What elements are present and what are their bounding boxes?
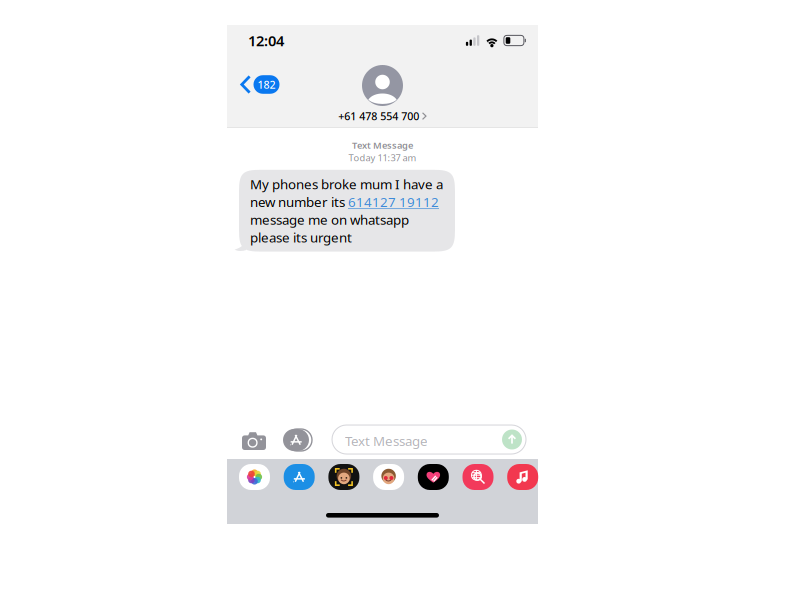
staticText: 614127 19112 — [348, 193, 439, 211]
staticText: message me on whatsapp — [250, 211, 409, 228]
staticText: +61 478 554 700 — [338, 109, 419, 123]
staticText: 182 — [257, 77, 275, 92]
staticText: new number its — [250, 193, 348, 211]
button[interactable]: App Store — [283, 429, 312, 451]
button[interactable]: Take photo — [242, 431, 266, 450]
button[interactable]: Photos — [239, 464, 270, 490]
button[interactable]: App Store — [284, 464, 315, 490]
button[interactable]: Images — [462, 464, 493, 490]
button[interactable]: Back to conversation list — [240, 75, 279, 94]
staticText: please its urgent — [250, 228, 352, 246]
staticText: Text Message — [345, 432, 428, 450]
staticText: Today 11:37 am — [348, 151, 416, 164]
staticText: My phones broke mum I have a — [250, 175, 443, 193]
button[interactable]: Memoji — [328, 464, 359, 490]
button[interactable]: Digital Touch — [418, 464, 449, 490]
staticText: Text Message — [352, 139, 413, 151]
button[interactable]: Music — [507, 464, 538, 490]
button[interactable]: Memoji stickers — [373, 464, 404, 490]
staticText: 12:04 — [248, 31, 284, 50]
button[interactable]: +61 478 554 700 — [338, 65, 427, 123]
button[interactable]: Text Message field — [332, 425, 526, 454]
